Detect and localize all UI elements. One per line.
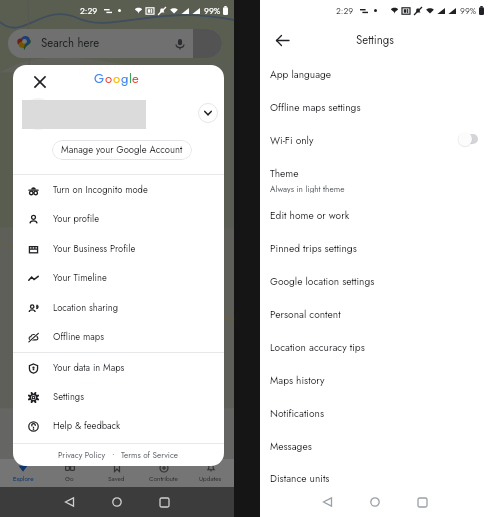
- staticText: Pinned trips settings: [270, 241, 357, 256]
- staticText: Manage your Google Account: [61, 143, 183, 157]
- staticText: Google location settings: [270, 274, 375, 289]
- button[interactable]: Updates: [187, 459, 234, 487]
- staticText: •: [112, 449, 115, 461]
- button[interactable]: Your Timeline: [13, 263, 224, 293]
- button[interactable]: Messages: [260, 433, 490, 466]
- staticText: Notifications: [270, 406, 324, 421]
- staticText: 99%: [204, 5, 221, 17]
- button[interactable]: Terms of Service: [121, 449, 179, 461]
- staticText: Always in light theme: [270, 183, 345, 193]
- button[interactable]: Personal content: [260, 301, 490, 334]
- button[interactable]: Location sharing: [13, 293, 224, 323]
- button[interactable]: Your data in Maps: [13, 353, 224, 383]
- staticText: Help & feedback: [53, 419, 121, 433]
- staticText: Go: [65, 474, 74, 483]
- button[interactable]: Distance units: [260, 465, 490, 498]
- button[interactable]: Edit home or work: [260, 202, 490, 235]
- staticText: e: [132, 69, 139, 88]
- staticText: Turn on Incognito mode: [53, 183, 148, 197]
- button[interactable]: Wi-Fi only: [260, 127, 490, 160]
- button[interactable]: Turn on Incognito mode: [13, 175, 224, 205]
- button[interactable]: Location accuracy tips: [260, 334, 490, 367]
- button[interactable]: Wi-Fi only toggle: [458, 131, 478, 147]
- staticText: Search here: [41, 35, 100, 52]
- button[interactable]: Back: [55, 487, 85, 517]
- staticText: Personal content: [270, 307, 341, 322]
- button[interactable]: Go: [46, 459, 93, 487]
- staticText: 2:29: [336, 5, 354, 17]
- button[interactable]: Notifications: [260, 400, 490, 433]
- staticText: g: [121, 69, 129, 88]
- button[interactable]: Home: [102, 487, 132, 517]
- staticText: Settings: [53, 390, 84, 404]
- staticText: o: [105, 69, 113, 88]
- staticText: Your Business Profile: [53, 242, 136, 256]
- staticText: App language: [270, 67, 332, 82]
- staticText: Wi-Fi only: [270, 133, 314, 148]
- button[interactable]: Your profile: [13, 204, 224, 234]
- button[interactable]: Close: [28, 70, 52, 94]
- staticText: 2:29: [80, 5, 98, 17]
- button[interactable]: Offline maps: [13, 322, 224, 352]
- staticText: l: [129, 69, 132, 88]
- staticText: Edit home or work: [270, 208, 350, 223]
- staticText: Offline maps: [53, 330, 104, 344]
- button[interactable]: Manage your Google Account: [52, 140, 192, 160]
- button[interactable]: Recents: [149, 487, 179, 517]
- staticText: Theme: [270, 166, 299, 181]
- staticText: Location accuracy tips: [270, 340, 365, 355]
- staticText: 99%: [460, 5, 477, 17]
- staticText: Updates: [199, 474, 222, 483]
- button[interactable]: Google location settings: [260, 268, 490, 301]
- button[interactable]: Back: [270, 28, 294, 52]
- staticText: Distance units: [270, 471, 330, 486]
- button[interactable]: App language: [260, 61, 490, 94]
- staticText: Contribute: [149, 474, 178, 483]
- staticText: Messages: [270, 439, 312, 454]
- button[interactable]: Search here: [8, 29, 222, 58]
- staticText: Location sharing: [53, 301, 119, 315]
- staticText: Your data in Maps: [53, 361, 125, 375]
- button[interactable]: Saved: [93, 459, 140, 487]
- button[interactable]: Maps history: [260, 367, 490, 400]
- staticText: Your profile: [53, 212, 100, 226]
- button[interactable]: Offline maps settings: [260, 94, 490, 127]
- button[interactable]: Explore: [0, 459, 46, 487]
- button[interactable]: Your Business Profile: [13, 234, 224, 264]
- button[interactable]: Help & feedback: [13, 411, 224, 441]
- button[interactable]: Privacy Policy: [58, 449, 106, 461]
- button[interactable]: Recents: [407, 487, 437, 517]
- button[interactable]: Back: [313, 487, 343, 517]
- button[interactable]: Settings: [13, 382, 224, 412]
- staticText: Settings: [356, 32, 394, 49]
- button[interactable]: Pinned trips settings: [260, 235, 490, 268]
- button[interactable]: Home: [360, 487, 390, 517]
- button[interactable]: Contribute: [140, 459, 187, 487]
- staticText: Explore: [13, 474, 34, 483]
- button[interactable]: Theme: [260, 160, 490, 193]
- button[interactable]: Show more accounts: [196, 101, 220, 125]
- staticText: G: [94, 69, 105, 88]
- staticText: o: [113, 69, 121, 88]
- staticText: Maps history: [270, 373, 325, 388]
- staticText: Offline maps settings: [270, 100, 361, 115]
- staticText: Your Timeline: [53, 271, 107, 285]
- staticText: Saved: [108, 474, 125, 483]
